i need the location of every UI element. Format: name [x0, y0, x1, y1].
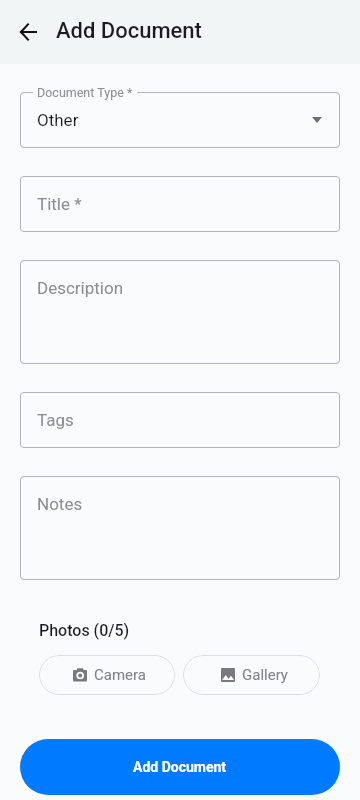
button[interactable] [20, 92, 340, 148]
button[interactable]: Title * [20, 176, 340, 232]
staticText: Notes [37, 494, 83, 514]
button[interactable]: Description [20, 260, 340, 364]
staticText: Add Document [56, 18, 202, 44]
staticText: Other [37, 110, 79, 130]
button[interactable]: Gallery [183, 655, 320, 695]
button[interactable]: Tags [20, 392, 340, 448]
staticText: Add Document [133, 759, 227, 775]
button[interactable]: Notes [20, 476, 340, 580]
button[interactable]: Back [4, 8, 52, 56]
button[interactable]: Camera [39, 655, 175, 695]
staticText: Description [37, 278, 124, 298]
staticText: Document Type * [37, 85, 133, 100]
staticText: Camera [94, 666, 146, 684]
staticText: Photos (0/5) [39, 621, 130, 640]
staticText: Title * [37, 194, 82, 214]
button[interactable]: Add Document [20, 739, 340, 795]
staticText: Gallery [242, 666, 288, 684]
staticText: Tags [37, 410, 74, 430]
